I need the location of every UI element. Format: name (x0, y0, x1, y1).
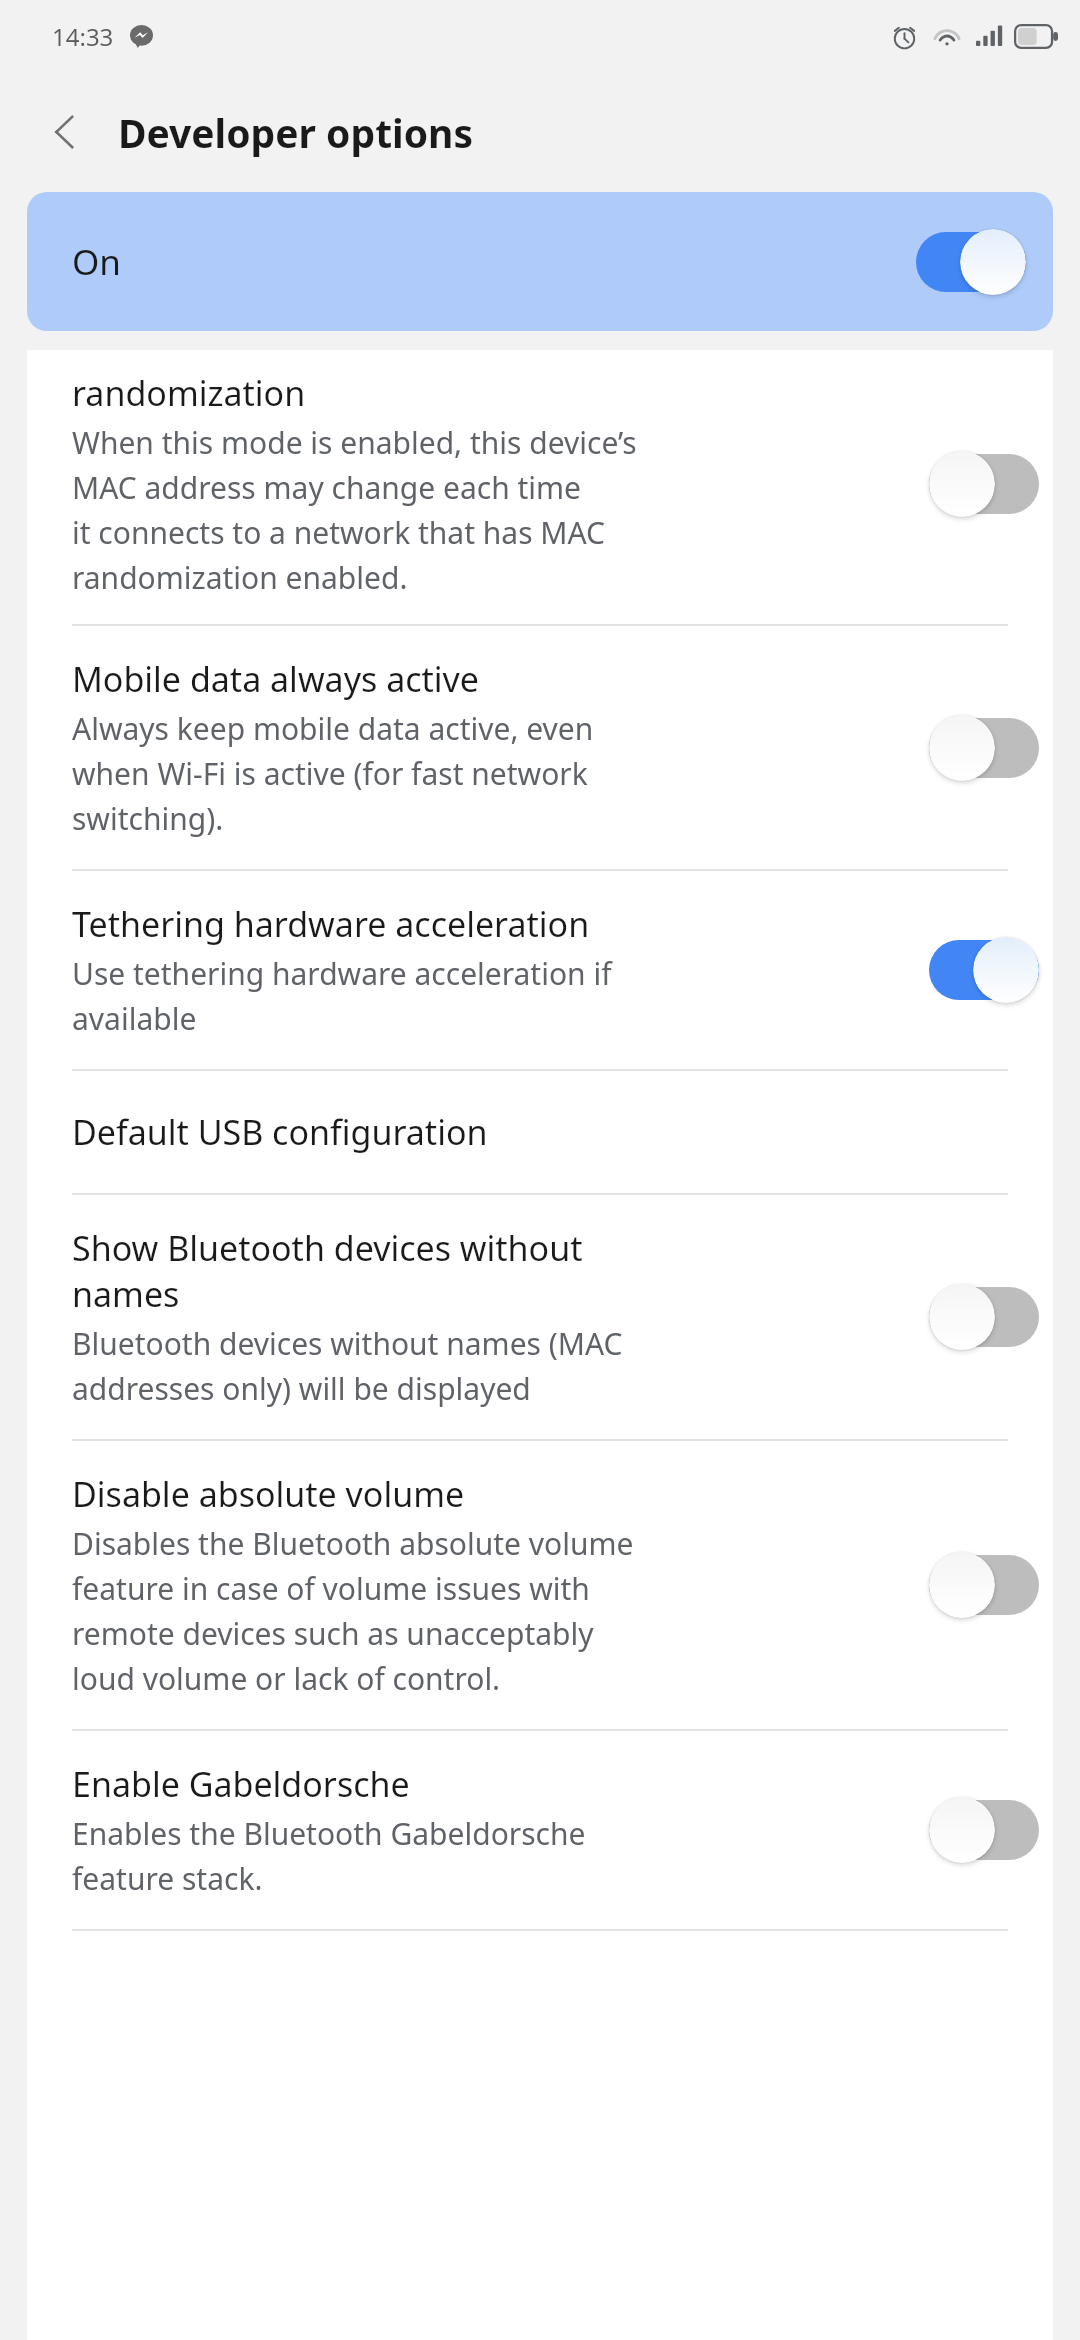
staticText: 14:33 (52, 20, 114, 53)
staticText: Mobile data always active (72, 656, 480, 702)
button[interactable]: Show Bluetooth devices without names (27, 1195, 1053, 1439)
staticText: Developer options (118, 106, 474, 159)
button[interactable]: Toggle Mobile data always active (929, 713, 1039, 783)
staticText: Tethering hardware acceleration (72, 901, 590, 947)
staticText: randomization (72, 370, 306, 416)
staticText: Disable absolute volume (72, 1471, 465, 1517)
button[interactable]: Toggle randomization (929, 449, 1039, 519)
staticText: Disables the Bluetooth absolute volume f… (72, 1523, 634, 1699)
button[interactable]: Toggle Enable Gabeldorsche (929, 1795, 1039, 1865)
staticText: When this mode is enabled, this device’s… (72, 422, 637, 598)
button[interactable]: Toggle Show Bluetooth devices without na… (929, 1282, 1039, 1352)
button[interactable]: Toggle Disable absolute volume (929, 1550, 1039, 1620)
button[interactable]: Enable Gabeldorsche (27, 1731, 1053, 1929)
staticText: Bluetooth devices without names (MAC add… (72, 1323, 623, 1409)
staticText: Always keep mobile data active, even whe… (72, 708, 594, 839)
button[interactable]: Default USB configuration (27, 1071, 1053, 1193)
button[interactable]: Disable absolute volume (27, 1441, 1053, 1729)
button[interactable]: Tethering hardware acceleration (27, 871, 1053, 1069)
staticText: Enables the Bluetooth Gabeldorsche featu… (72, 1813, 586, 1899)
staticText: Show Bluetooth devices without names (72, 1225, 583, 1317)
staticText: Default USB configuration (72, 1109, 488, 1155)
button[interactable]: On (27, 192, 1053, 331)
button[interactable]: Mobile data always active (27, 626, 1053, 869)
button[interactable]: Back (34, 101, 96, 163)
button[interactable]: randomization (27, 350, 1053, 624)
staticText: Enable Gabeldorsche (72, 1761, 410, 1807)
staticText: Use tethering hardware acceleration if a… (72, 953, 612, 1039)
button[interactable]: Toggle Tethering hardware acceleration (929, 935, 1039, 1005)
staticText: On (72, 238, 121, 286)
